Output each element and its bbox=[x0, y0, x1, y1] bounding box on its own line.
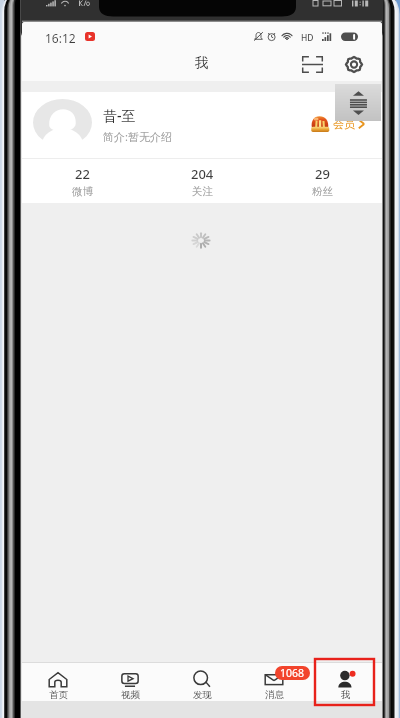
staticText: 昔-至 bbox=[103, 106, 136, 125]
staticText: 粉丝 bbox=[312, 185, 333, 198]
button[interactable]: 204 bbox=[142, 159, 262, 203]
staticText: 22 bbox=[75, 165, 90, 183]
staticText: 16:12 bbox=[45, 30, 76, 46]
staticText: 会员 bbox=[333, 117, 355, 131]
button[interactable]: 消息 bbox=[238, 663, 310, 701]
button[interactable]: Scroll assist bbox=[335, 84, 381, 121]
staticText: 我 bbox=[195, 54, 209, 71]
button[interactable]: Settings bbox=[338, 48, 370, 80]
staticText: 首页 bbox=[49, 689, 68, 701]
staticText: 29 bbox=[315, 165, 330, 183]
staticText: 我 bbox=[341, 689, 351, 701]
staticText: 消息 bbox=[265, 689, 284, 701]
button[interactable]: 我 bbox=[310, 663, 382, 701]
button[interactable]: 发现 bbox=[166, 663, 238, 701]
button[interactable]: Scan QR code bbox=[286, 48, 338, 80]
staticText: 发现 bbox=[193, 689, 212, 701]
staticText: 视频 bbox=[121, 689, 140, 701]
staticText: HD bbox=[301, 32, 314, 44]
button[interactable]: 29 bbox=[262, 159, 382, 203]
button[interactable]: 22 bbox=[22, 159, 142, 203]
staticText: 简介:暂无介绍 bbox=[103, 129, 172, 144]
staticText: 关注 bbox=[192, 185, 213, 198]
button[interactable]: 会员 bbox=[309, 113, 366, 134]
button[interactable]: 视频 bbox=[94, 663, 166, 701]
staticText: 微博 bbox=[72, 185, 93, 198]
staticText: 204 bbox=[191, 165, 214, 183]
button[interactable]: 昔-至 bbox=[22, 92, 382, 158]
button[interactable]: 首页 bbox=[22, 663, 94, 701]
staticText: 1068 bbox=[280, 666, 305, 680]
